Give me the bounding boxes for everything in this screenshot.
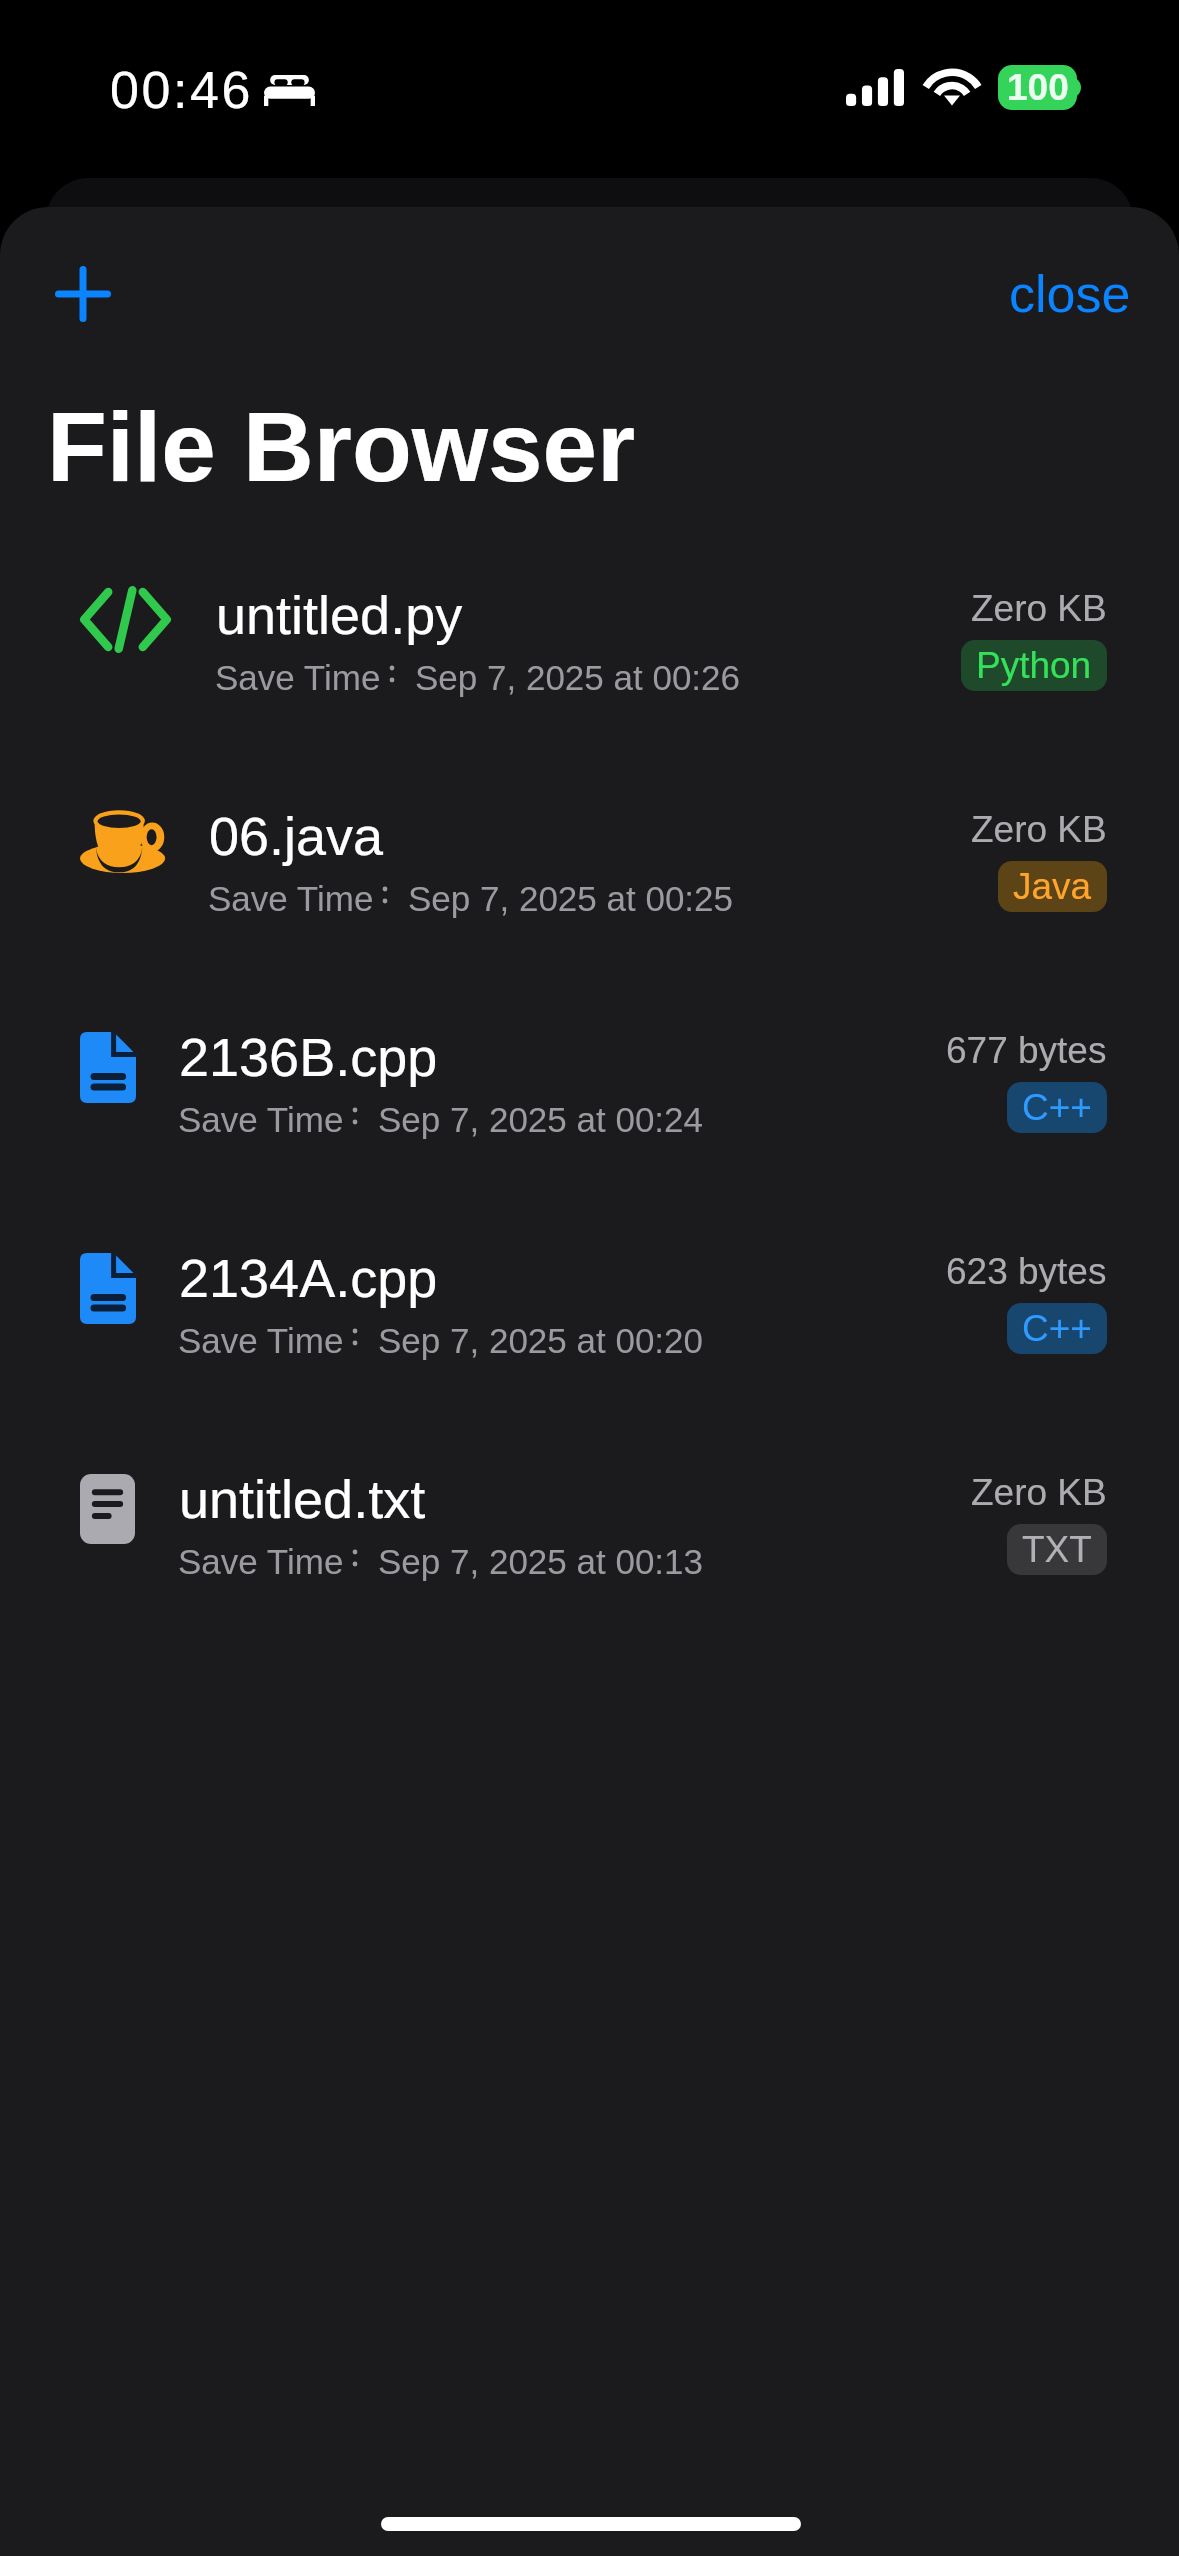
staticText: Zero KB	[971, 809, 1107, 850]
staticText: 06.java	[209, 806, 384, 866]
button[interactable]: untitled.txt	[0, 1448, 1179, 1669]
staticText: Zero KB	[971, 588, 1107, 629]
staticText: Java	[1013, 866, 1092, 907]
staticText: Save Time	[215, 658, 381, 697]
staticText: 677 bytes	[946, 1030, 1107, 1071]
button[interactable]: close	[981, 241, 1159, 347]
staticText: File Browser	[47, 392, 636, 501]
staticText: Save Time	[178, 1542, 344, 1581]
staticText: 2134A.cpp	[179, 1248, 438, 1308]
button[interactable]: 2136B.cpp	[0, 1006, 1179, 1227]
staticText: Sep 7, 2025 at 00:13	[378, 1542, 703, 1581]
staticText: Save Time	[208, 879, 374, 918]
staticText: C++	[1022, 1087, 1092, 1128]
staticText: Save Time	[178, 1321, 344, 1360]
staticText: Save Time	[178, 1100, 344, 1139]
staticText: Sep 7, 2025 at 00:20	[378, 1321, 703, 1360]
staticText: Sep 7, 2025 at 00:26	[415, 658, 740, 697]
staticText: C++	[1022, 1308, 1092, 1349]
staticText: 00:46	[110, 61, 254, 119]
button[interactable]: 2134A.cpp	[0, 1227, 1179, 1448]
button[interactable]: untitled.py	[0, 564, 1179, 785]
staticText: Python	[976, 645, 1092, 686]
button[interactable]: 06.java	[0, 785, 1179, 1006]
staticText: TXT	[1022, 1529, 1092, 1570]
staticText: Zero KB	[971, 1472, 1107, 1513]
staticText: untitled.txt	[179, 1469, 426, 1529]
staticText: untitled.py	[216, 585, 463, 645]
staticText: close	[1009, 265, 1131, 323]
staticText: 2136B.cpp	[179, 1027, 438, 1087]
button[interactable]: Add file	[30, 241, 136, 347]
staticText: Sep 7, 2025 at 00:25	[408, 879, 733, 918]
staticText: 100	[1007, 67, 1069, 108]
staticText: Sep 7, 2025 at 00:24	[378, 1100, 703, 1139]
staticText: 623 bytes	[946, 1251, 1107, 1292]
